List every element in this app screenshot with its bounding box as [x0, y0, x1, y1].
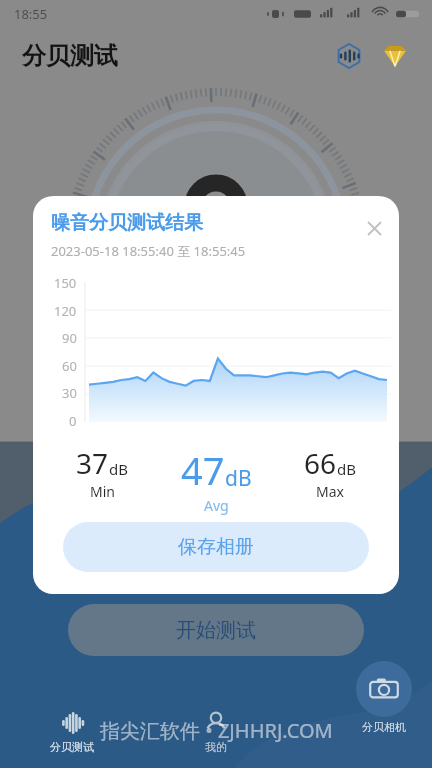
staticText: 60 — [62, 357, 77, 375]
button[interactable]: Close — [357, 211, 391, 245]
staticText: 分贝测试 — [50, 740, 94, 754]
staticText: 30 — [62, 384, 77, 402]
staticText: 47 — [181, 444, 225, 496]
staticText: 66 — [304, 444, 337, 482]
button[interactable]: 保存相册 — [63, 522, 369, 572]
staticText: 37 — [76, 444, 109, 482]
staticText: 150 — [54, 274, 77, 292]
staticText: 保存相册 — [178, 535, 254, 559]
button[interactable]: 分贝测试 — [0, 696, 144, 768]
button[interactable]: Measurement mode — [330, 37, 368, 75]
button[interactable]: 我的 — [144, 696, 288, 768]
staticText: 2023-05-18 18:55:40 至 18:55:45 — [51, 242, 246, 260]
staticText: 0 — [69, 412, 77, 430]
staticText: dB — [337, 459, 356, 479]
staticText: Min — [90, 482, 115, 501]
staticText: 分贝测试 — [22, 41, 118, 71]
staticText: 我的 — [205, 740, 227, 754]
staticText: 指尖汇软件 • ZJHHRJ.COM — [100, 717, 333, 744]
staticText: 120 — [54, 302, 77, 320]
staticText: 90 — [62, 329, 77, 347]
staticText: 噪音分贝测试结果 — [51, 211, 203, 235]
staticText: dB — [109, 459, 128, 479]
staticText: Max — [316, 482, 344, 501]
button[interactable]: Decibel camera — [352, 657, 416, 738]
staticText: 分贝相机 — [362, 720, 406, 734]
staticText: dB — [225, 464, 252, 493]
button[interactable]: 开始测试 — [68, 604, 364, 656]
staticText: 18:55 — [14, 5, 48, 23]
button[interactable]: Premium — [376, 37, 414, 75]
staticText: 开始测试 — [176, 618, 256, 643]
staticText: Avg — [204, 496, 229, 515]
